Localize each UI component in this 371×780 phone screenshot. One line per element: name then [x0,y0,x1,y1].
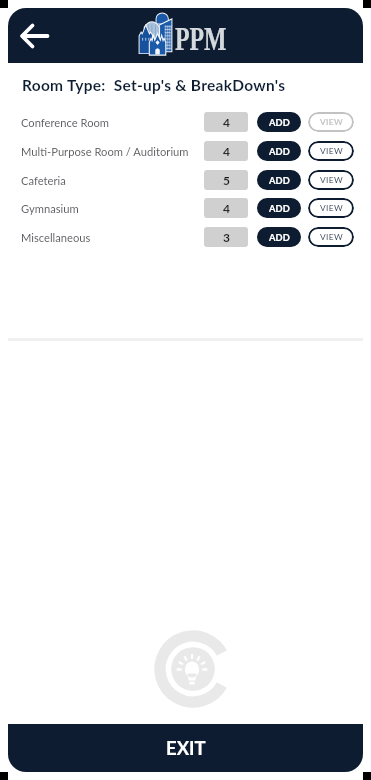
staticText: Room Type: Set-up's & BreakDown's [22,76,286,95]
staticText: ADD [269,175,290,186]
staticText: ADD [269,203,290,214]
staticText: VIEW [320,175,343,185]
staticText: 4 [223,115,230,129]
staticText: Cafeteria [21,174,204,187]
staticText: Conference Room [21,116,204,129]
staticText: Multi-Purpose Room / Auditorium [21,145,204,158]
button[interactable]: ADD [257,170,301,190]
button[interactable]: ADD [257,112,301,132]
button[interactable]: ADD [257,141,301,161]
staticText: 5 [223,173,230,187]
button[interactable]: ADD [257,227,301,247]
button[interactable]: EXIT [8,724,363,772]
button[interactable]: Back [14,16,54,56]
button[interactable]: VIEW [308,112,354,132]
button[interactable]: VIEW [308,227,354,247]
button[interactable]: VIEW [308,141,354,161]
staticText: ADD [269,232,290,243]
staticText: Miscellaneous [21,231,204,244]
staticText: VIEW [320,117,343,127]
staticText: VIEW [320,232,343,242]
staticText: Gymnasium [21,202,204,215]
staticText: 4 [223,201,230,215]
staticText: 3 [223,230,230,244]
button[interactable]: VIEW [308,198,354,218]
staticText: ADD [269,146,290,157]
staticText: EXIT [166,737,206,759]
button[interactable]: VIEW [308,170,354,190]
button[interactable]: ADD [257,198,301,218]
staticText: PPM [175,20,227,58]
staticText: VIEW [320,203,343,213]
staticText: VIEW [320,146,343,156]
staticText: ADD [269,117,290,128]
staticText: 4 [223,144,230,158]
